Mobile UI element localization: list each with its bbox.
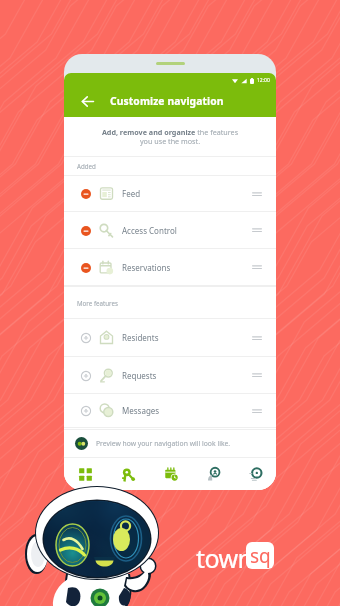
- button[interactable]: Add Messages: [79, 404, 92, 417]
- button[interactable]: Add Requests: [79, 369, 92, 382]
- staticText: town: [196, 541, 253, 570]
- staticText: Access Control: [122, 225, 177, 236]
- button[interactable]: More: [234, 458, 276, 490]
- staticText: More features: [77, 299, 118, 307]
- staticText: Customize navigation: [110, 94, 224, 108]
- button[interactable]: Reservations: [150, 458, 192, 490]
- button[interactable]: Residents: [192, 458, 234, 490]
- button[interactable]: Remove Reservations: [64, 249, 276, 285]
- staticText: Feed: [122, 188, 141, 199]
- button[interactable]: Add Residents: [79, 331, 92, 344]
- staticText: Requests: [122, 370, 157, 381]
- staticText: Reservations: [122, 262, 171, 273]
- staticText: Added: [77, 162, 96, 170]
- button[interactable]: Remove Feed: [79, 187, 92, 200]
- staticText: Add, remove and organize the features yo…: [97, 127, 243, 147]
- staticText: Messages: [122, 405, 160, 416]
- staticText: 12:00: [257, 77, 270, 84]
- button[interactable]: Back: [77, 91, 97, 111]
- button[interactable]: Add Residents: [64, 319, 276, 356]
- button[interactable]: Access Control: [107, 458, 150, 490]
- button[interactable]: Remove Access Control: [79, 224, 92, 237]
- staticText: Residents: [122, 332, 159, 343]
- button[interactable]: Remove Feed: [64, 176, 276, 211]
- staticText: sq: [250, 543, 271, 569]
- button[interactable]: Add Requests: [64, 357, 276, 393]
- button[interactable]: Remove Reservations: [79, 261, 92, 274]
- button[interactable]: Remove Access Control: [64, 212, 276, 248]
- button[interactable]: Add Messages: [64, 394, 276, 427]
- button[interactable]: Dashboard: [64, 458, 107, 490]
- staticText: Preview how your navigation will look li…: [96, 439, 231, 448]
- button[interactable]: Preview how your navigation will look li…: [64, 430, 276, 457]
